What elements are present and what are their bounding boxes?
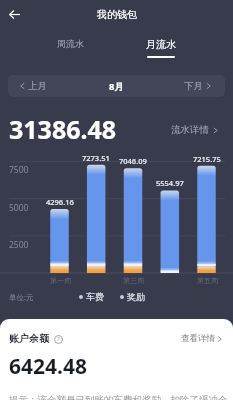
- staticText: 流水详情: [171, 124, 209, 136]
- staticText: 我的钱包: [97, 8, 137, 21]
- button[interactable]: 查看详情: [179, 331, 224, 346]
- staticText: 5554.97: [156, 178, 184, 188]
- staticText: 下月: [184, 80, 203, 92]
- staticText: 7500: [9, 164, 29, 176]
- staticText: 第一周: [50, 276, 71, 285]
- staticText: 查看详情: [181, 333, 215, 344]
- staticText: 月流水: [146, 38, 176, 51]
- staticText: 第五周: [197, 276, 218, 285]
- staticText: 奖励: [127, 291, 145, 302]
- staticText: 第三周: [123, 276, 144, 285]
- other: Help: [53, 334, 63, 344]
- button[interactable]: Back: [3, 3, 25, 25]
- staticText: 5000: [9, 202, 29, 214]
- staticText: 周流水: [57, 38, 84, 49]
- staticText: 单位:元: [9, 292, 34, 302]
- button[interactable]: 周流水: [53, 34, 88, 53]
- button[interactable]: 流水详情: [168, 121, 221, 139]
- button[interactable]: 上月: [8, 76, 55, 96]
- staticText: 6424.48: [9, 352, 87, 381]
- staticText: 上月: [28, 80, 47, 92]
- button[interactable]: 月流水: [142, 34, 180, 62]
- staticText: 2500: [9, 239, 29, 251]
- staticText: 8月: [109, 80, 124, 93]
- staticText: 7215.75: [193, 154, 221, 164]
- staticText: 7046.09: [119, 156, 147, 166]
- button[interactable]: 下月: [176, 76, 225, 96]
- staticText: 车费: [86, 291, 104, 302]
- staticText: 4296.16: [46, 197, 74, 207]
- staticText: 提示：该金额是已到账的车费和奖励，扣除了缓冲金: [9, 394, 228, 400]
- staticText: ?: [57, 335, 60, 343]
- staticText: 7273.51: [82, 153, 110, 163]
- staticText: 账户余额: [9, 332, 49, 345]
- staticText: 31386.48: [9, 112, 117, 146]
